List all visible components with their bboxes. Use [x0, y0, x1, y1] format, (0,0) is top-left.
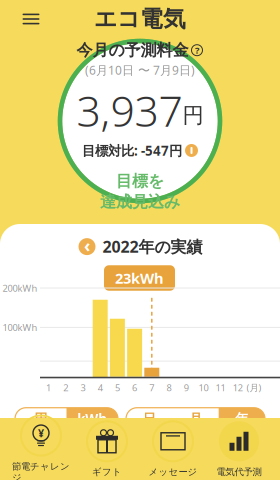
- staticText: 円: [34, 410, 47, 427]
- staticText: 4: [98, 381, 103, 394]
- staticText: ?: [195, 44, 199, 56]
- button[interactable]: kWh: [66, 408, 118, 430]
- staticText: (月): [246, 381, 261, 394]
- staticText: (6月10日 〜 7月9日): [85, 62, 195, 78]
- button[interactable]: 月: [172, 408, 219, 430]
- staticText: 1: [46, 381, 51, 394]
- staticText: 電気代予測: [216, 466, 261, 478]
- button[interactable]: メニュー: [14, 4, 48, 34]
- button[interactable]: メッセージ: [140, 420, 206, 478]
- button[interactable]: 電気代予測: [206, 420, 272, 478]
- staticText: 達成見込み: [100, 192, 180, 212]
- staticText: 7: [149, 381, 154, 394]
- staticText: 3,937: [76, 82, 182, 139]
- staticText: ※各種数値は全て概算で表示しています。: [51, 435, 229, 447]
- button[interactable]: ギフト: [74, 420, 140, 478]
- staticText: メッセージ: [148, 466, 197, 478]
- staticText: kWh: [77, 410, 107, 428]
- staticText: 節電チャレンジ: [12, 460, 70, 480]
- staticText: 日: [143, 410, 156, 427]
- staticText: 年: [235, 410, 248, 427]
- staticText: 目標対比: -547円: [82, 142, 182, 159]
- staticText: 8: [166, 381, 171, 394]
- staticText: 100kWh: [2, 321, 37, 334]
- button[interactable]: 日: [126, 408, 172, 430]
- staticText: エコ電気: [94, 5, 186, 33]
- staticText: 5: [115, 381, 120, 394]
- button[interactable]: 説明: [190, 44, 203, 57]
- staticText: 3: [80, 381, 85, 394]
- staticText: 11: [216, 381, 226, 394]
- button[interactable]: 前の年: [77, 237, 96, 256]
- staticText: 200kWh: [2, 282, 37, 294]
- staticText: 23kWh: [115, 268, 164, 288]
- button[interactable]: ¥: [8, 414, 74, 480]
- staticText: ギフト: [92, 466, 122, 478]
- staticText: 12: [233, 381, 243, 394]
- staticText: ‹: [84, 234, 90, 257]
- staticText: 9: [184, 381, 189, 394]
- button[interactable]: 円: [15, 408, 66, 430]
- staticText: 2: [63, 381, 68, 394]
- staticText: ¥: [38, 426, 44, 440]
- staticText: 円: [182, 102, 203, 128]
- staticText: 月: [189, 410, 202, 427]
- staticText: 10: [198, 381, 208, 394]
- staticText: 目標を: [116, 171, 164, 191]
- staticText: 6: [132, 381, 137, 394]
- staticText: 今月の予測料金: [76, 40, 188, 60]
- staticText: 2022年の実績: [102, 236, 202, 257]
- button[interactable]: 年: [219, 408, 265, 430]
